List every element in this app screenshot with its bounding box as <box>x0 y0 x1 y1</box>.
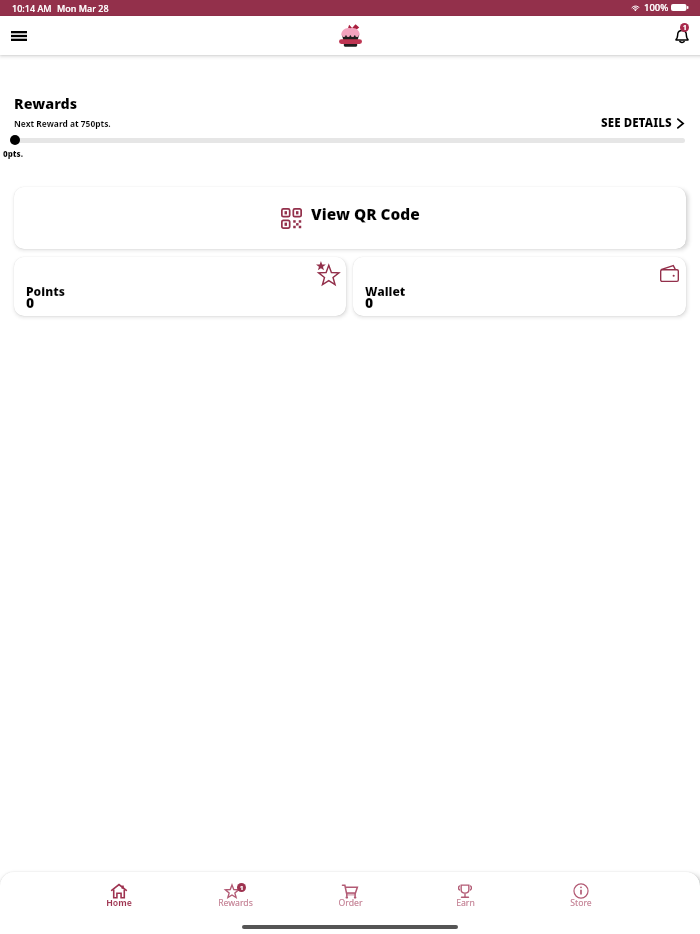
staticText: Next Reward at 750pts. <box>14 118 111 129</box>
staticText: View QR Code <box>311 204 420 225</box>
staticText: 0 <box>365 293 374 312</box>
button[interactable]: Points <box>14 257 346 316</box>
staticText: Order <box>338 897 363 909</box>
button[interactable]: Menu <box>4 21 34 51</box>
staticText: 100% <box>644 1 669 14</box>
staticText: Wallet <box>365 283 406 299</box>
staticText: 1 <box>683 23 687 32</box>
button[interactable]: 1 <box>204 883 266 911</box>
button[interactable]: Store <box>550 883 612 911</box>
staticText: Rewards <box>218 897 253 909</box>
staticText: 0pts. <box>3 148 23 159</box>
staticText: Mon Mar 28 <box>57 2 109 14</box>
staticText: 1 <box>240 884 244 892</box>
staticText: SEE DETAILS <box>601 115 672 131</box>
button[interactable]: Notifications <box>665 21 691 45</box>
staticText: Store <box>570 897 592 909</box>
button[interactable]: View QR Code <box>14 187 686 249</box>
staticText: Rewards <box>14 94 78 113</box>
button[interactable]: Home <box>88 883 150 911</box>
button[interactable]: Wallet <box>353 257 686 316</box>
staticText: 0 <box>26 293 35 312</box>
button[interactable]: SEE DETAILS <box>601 115 684 131</box>
button[interactable]: Order <box>319 883 381 911</box>
staticText: Earn <box>456 897 475 909</box>
staticText: 10:14 AM <box>12 2 52 14</box>
staticText: Home <box>106 897 132 909</box>
button[interactable]: Earn <box>434 883 496 911</box>
staticText: Points <box>26 283 65 299</box>
